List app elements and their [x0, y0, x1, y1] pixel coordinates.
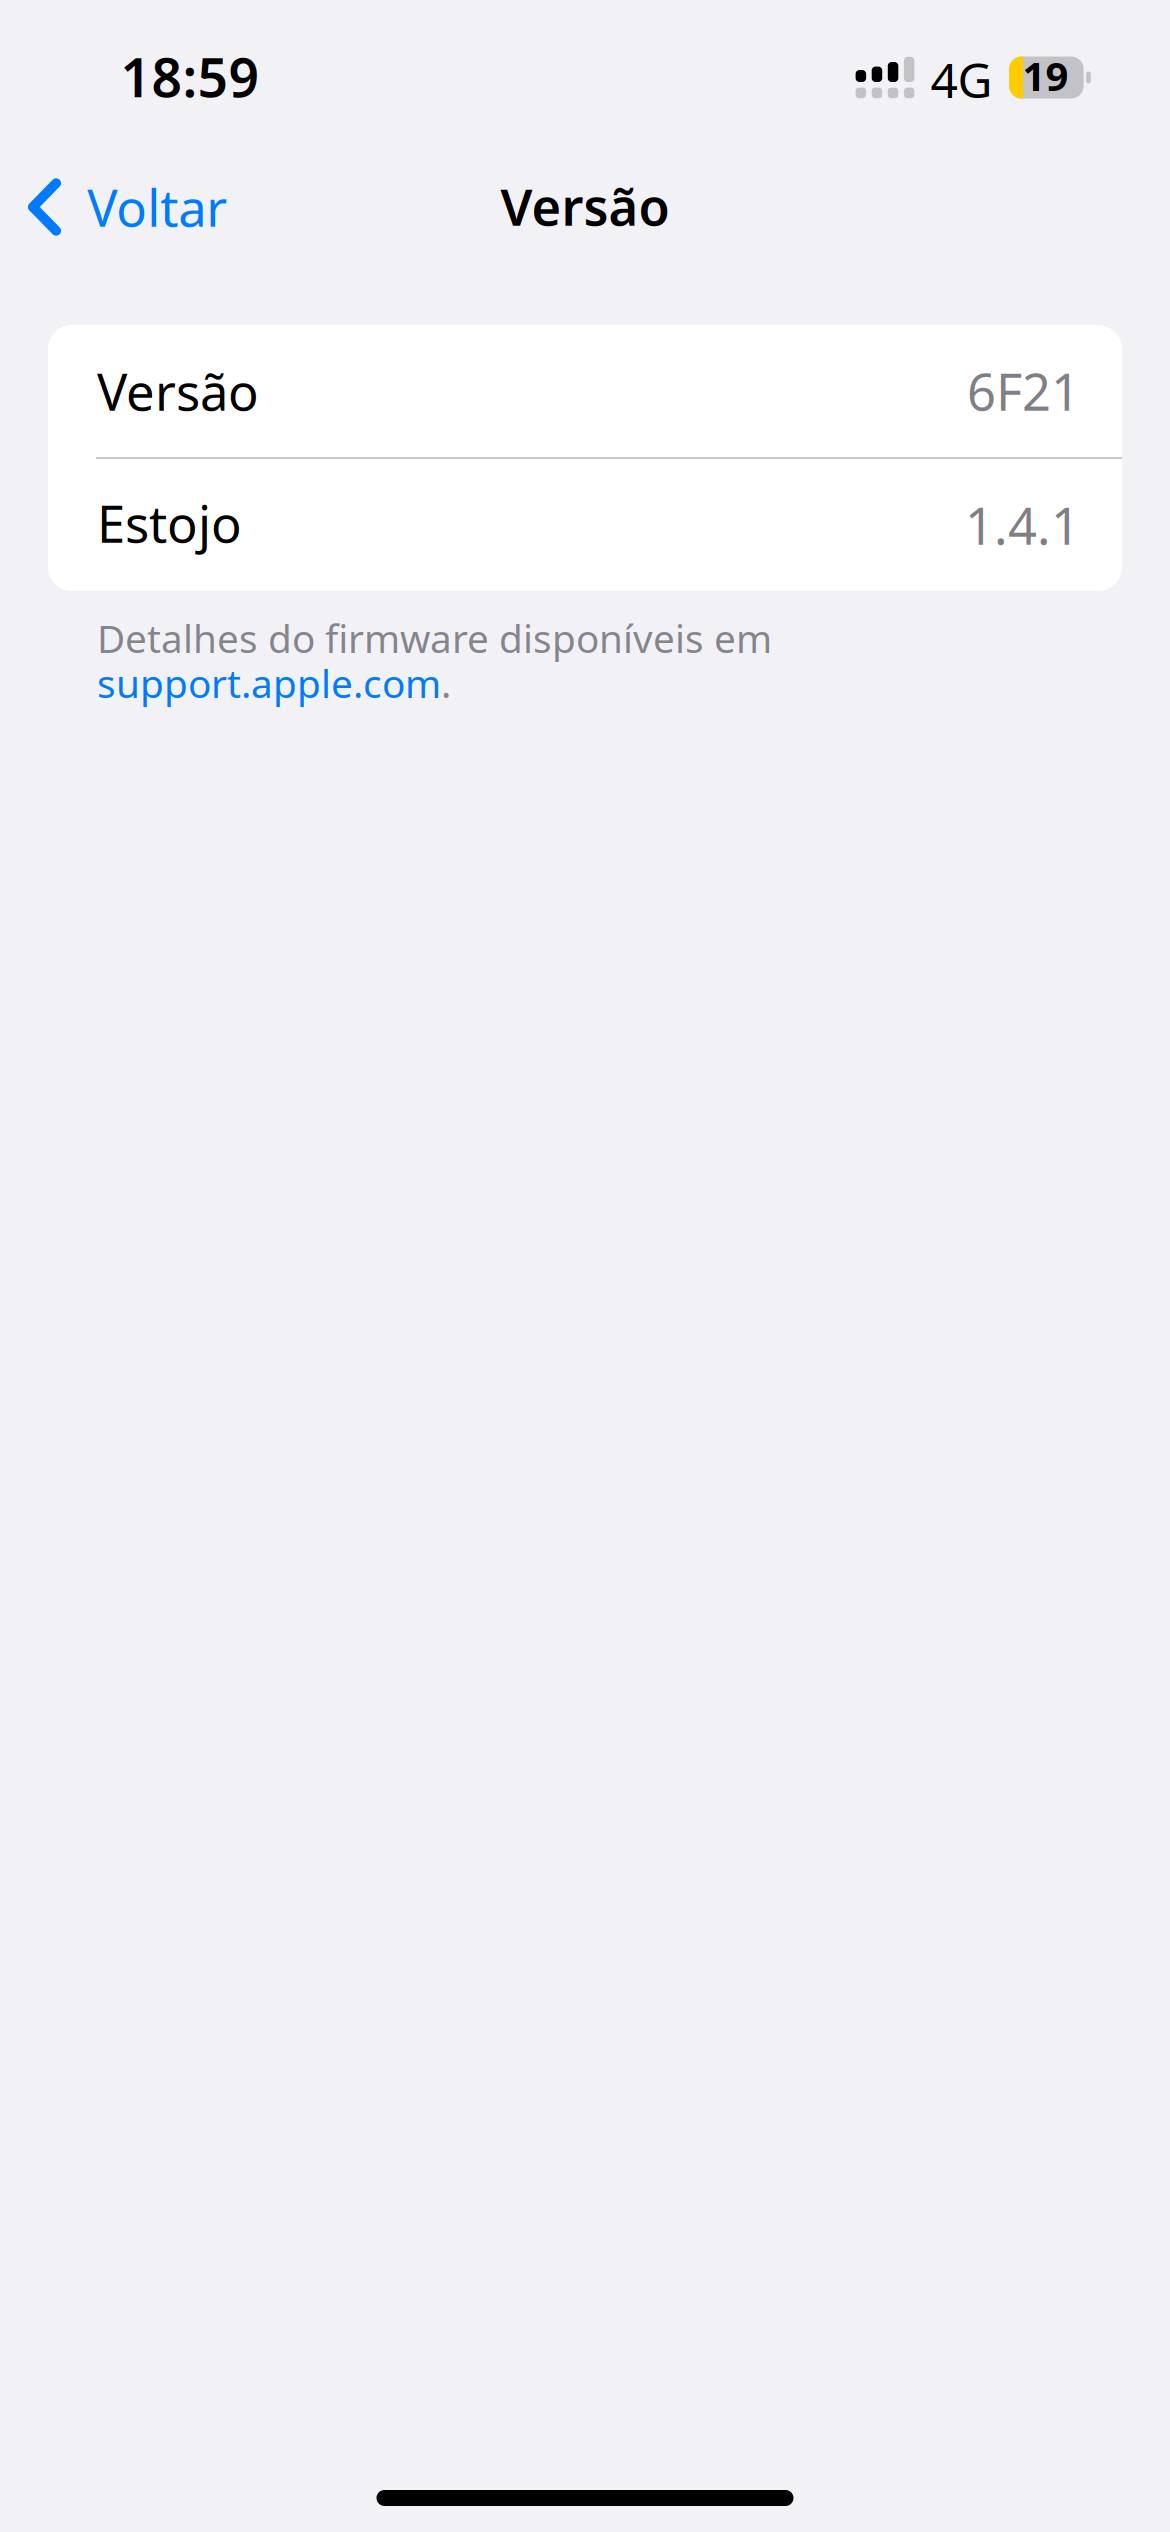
- staticText: 19: [1022, 49, 1068, 102]
- staticText: 4G: [930, 48, 992, 111]
- staticText: Versão: [97, 357, 259, 425]
- staticText: support.apple.com: [97, 657, 441, 709]
- staticText: Detalhes do firmware disponíveis em: [97, 612, 772, 664]
- staticText: .: [441, 657, 451, 709]
- staticText: Versão: [500, 172, 669, 240]
- button[interactable]: Versão: [48, 325, 1122, 457]
- staticText: Voltar: [87, 173, 227, 241]
- staticText: Estojo: [97, 489, 242, 557]
- button[interactable]: Voltar: [1, 155, 249, 259]
- staticText: 6F21: [967, 357, 1080, 425]
- staticText: 18:59: [120, 41, 259, 112]
- button[interactable]: support.apple.com: [97, 657, 441, 709]
- button[interactable]: Estojo: [48, 459, 1122, 591]
- staticText: 1.4.1: [965, 491, 1080, 559]
